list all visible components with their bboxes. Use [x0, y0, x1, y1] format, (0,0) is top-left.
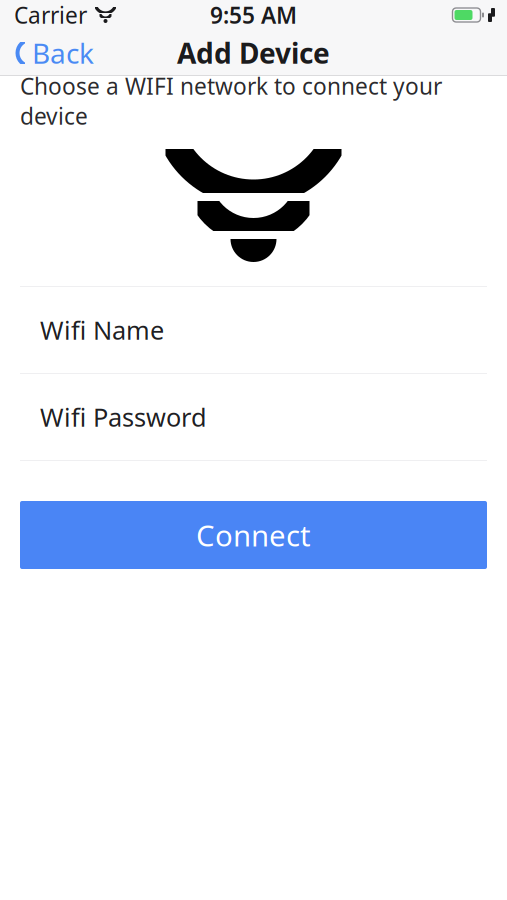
- staticText: Wifi Password: [40, 400, 207, 434]
- staticText: 9:55 AM: [210, 0, 297, 30]
- staticText: Carrier: [14, 0, 87, 30]
- staticText: Choose a WIFI network to connect your de…: [20, 71, 442, 131]
- button[interactable]: Connect: [0, 501, 507, 569]
- button[interactable]: Back: [0, 30, 106, 76]
- staticText: Wifi Name: [40, 313, 164, 347]
- button[interactable]: Wifi Password: [0, 374, 507, 460]
- staticText: Connect: [196, 515, 311, 554]
- staticText: Back: [32, 34, 94, 72]
- button[interactable]: Wifi Name: [0, 287, 507, 373]
- staticText: Add Device: [177, 34, 330, 72]
